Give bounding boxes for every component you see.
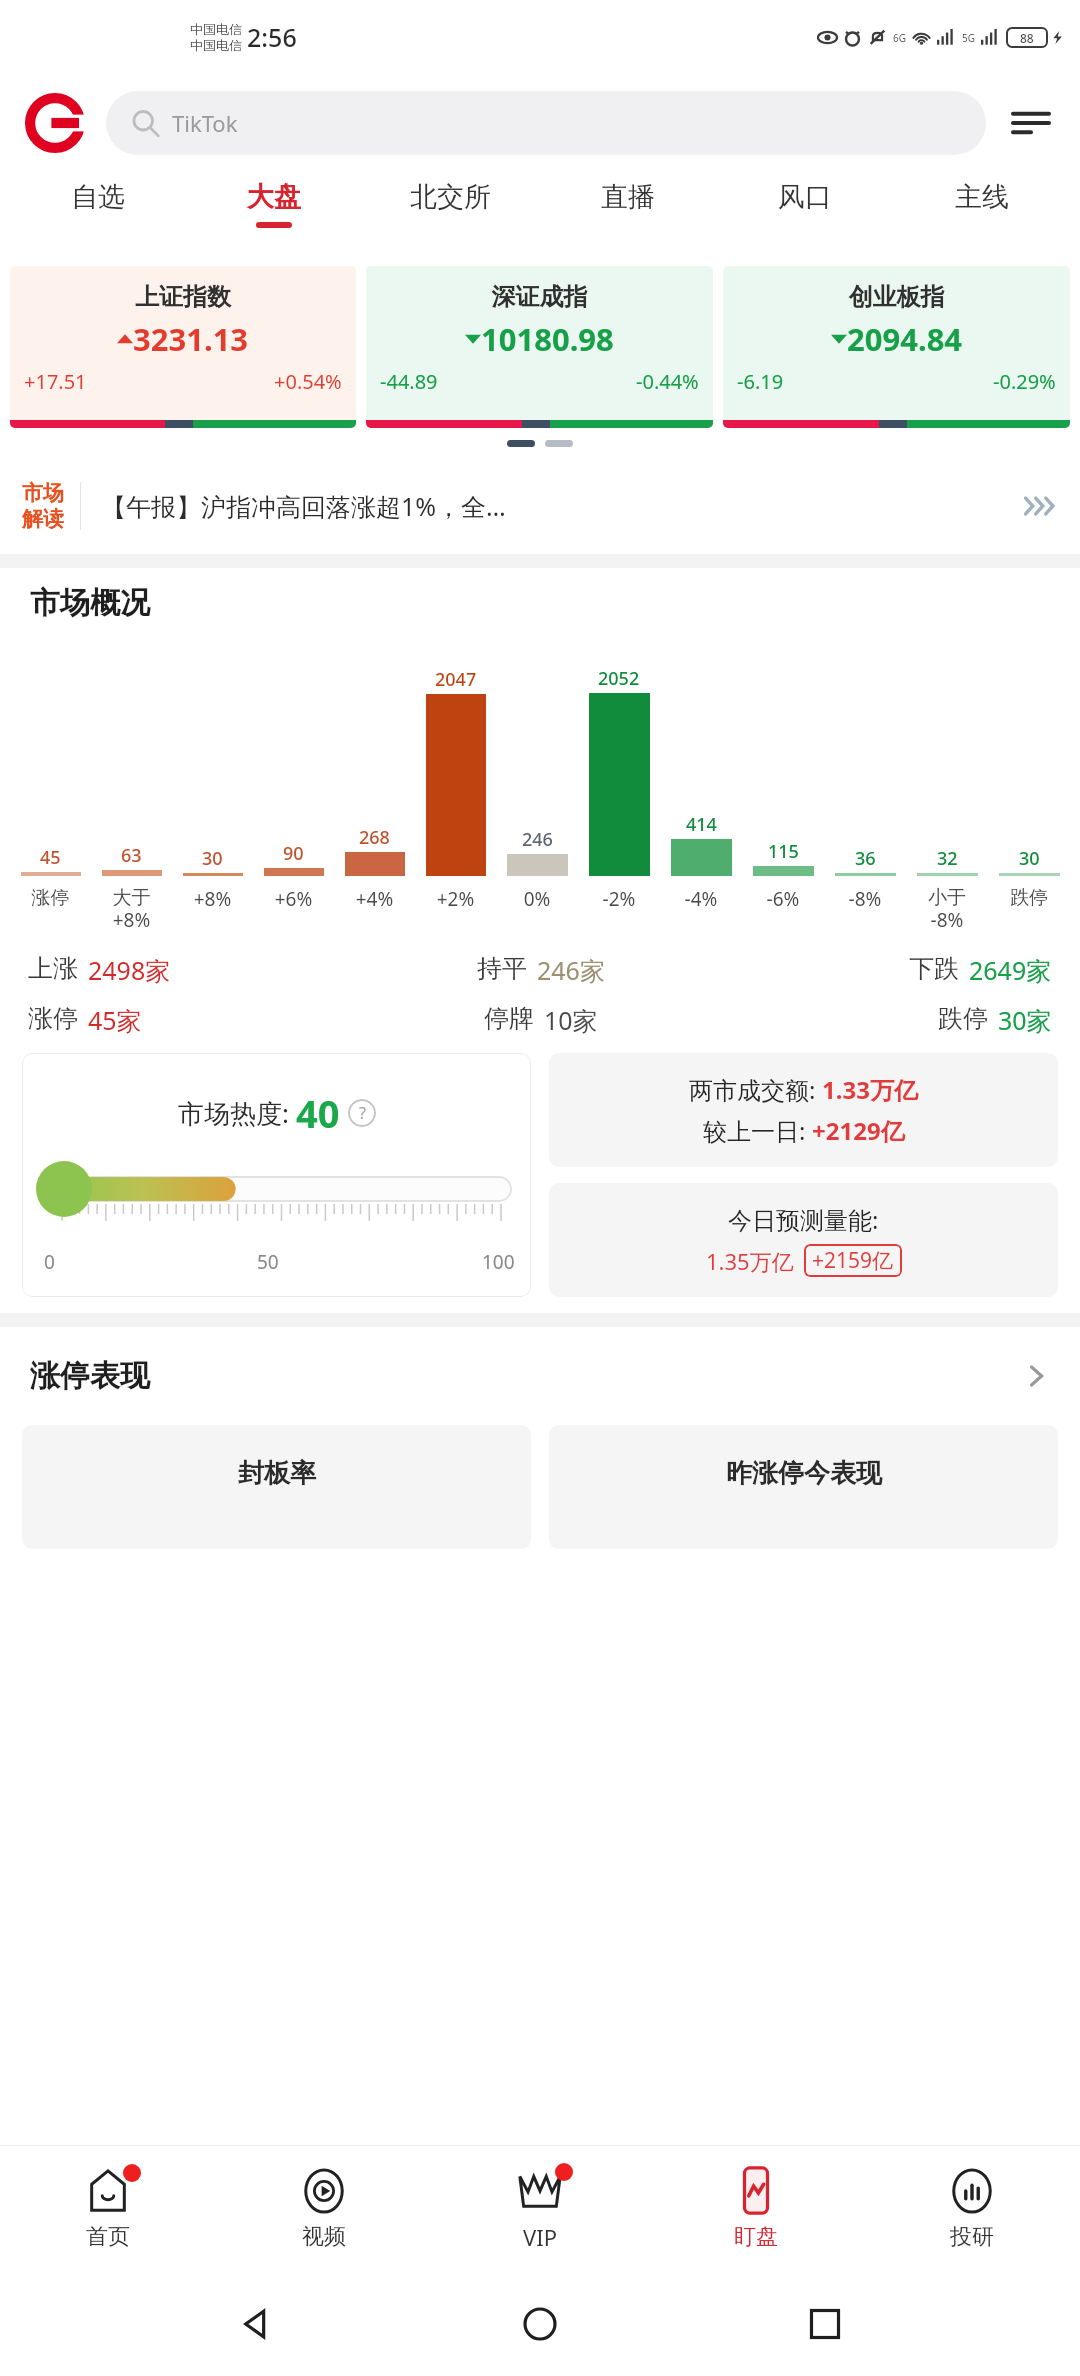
staticText: 246家	[537, 953, 605, 987]
staticText: 10180.98	[481, 318, 614, 360]
staticText: 涨停	[28, 1003, 78, 1034]
staticText: -0.29%	[993, 368, 1056, 395]
staticText: 246	[522, 827, 553, 852]
staticText: -44.89	[380, 368, 438, 395]
staticText: 1.33万亿	[822, 1073, 918, 1106]
staticText: -2%	[578, 886, 660, 912]
staticText: +4%	[334, 886, 415, 912]
button[interactable]: 市场	[0, 458, 1080, 554]
button[interactable]: 投研	[864, 2146, 1080, 2272]
staticText: 市场概况	[30, 584, 150, 622]
staticText: 首页	[86, 2223, 130, 2251]
staticText: +6%	[253, 886, 334, 912]
button[interactable]: 创业板指	[723, 266, 1070, 428]
staticText: ?	[359, 1102, 366, 1124]
staticText: 停牌	[484, 1003, 534, 1034]
staticText: 32	[937, 846, 958, 871]
staticText: 今日预测量能:	[728, 1203, 879, 1236]
staticText: 市场热度:	[178, 1095, 296, 1131]
staticText: 解读	[22, 506, 64, 532]
staticText: TikTok	[172, 108, 238, 138]
staticText: 10家	[544, 1003, 598, 1037]
button[interactable]: Back	[227, 2295, 285, 2353]
staticText: 昨涨停今表现	[726, 1457, 882, 1490]
staticText: 市场	[22, 480, 64, 506]
button[interactable]: 主线	[893, 172, 1070, 222]
staticText: 涨停	[10, 886, 91, 910]
staticText: -0.44%	[636, 368, 699, 395]
staticText: -6.19	[737, 368, 784, 395]
staticText: 90	[283, 841, 304, 866]
staticText: VIP	[523, 2222, 557, 2252]
staticText: 2649家	[969, 953, 1052, 987]
staticText: 40	[296, 1087, 340, 1139]
staticText: 30	[1019, 846, 1040, 871]
staticText: 414	[686, 812, 717, 837]
button[interactable]: Home	[511, 2295, 569, 2353]
staticText: 主线	[955, 180, 1009, 214]
staticText: 0	[44, 1249, 55, 1275]
button[interactable]: 大盘	[186, 172, 362, 228]
staticText: 88	[1020, 30, 1034, 46]
button[interactable]: 首页	[0, 2146, 216, 2272]
staticText: 两市成交额:	[689, 1073, 822, 1106]
button[interactable]: 自选	[10, 172, 186, 222]
staticText: 大盘	[247, 180, 301, 214]
staticText: 持平	[477, 953, 527, 984]
staticText: 0%	[496, 886, 578, 912]
button[interactable]: 涨停表现	[0, 1327, 1080, 1425]
staticText: 2094.84	[847, 318, 963, 360]
staticText: 268	[359, 825, 390, 850]
button[interactable]: Recents	[796, 2295, 854, 2353]
staticText: 自选	[71, 180, 125, 214]
staticText: +0.54%	[274, 368, 342, 395]
staticText: 5G	[962, 31, 975, 45]
button[interactable]: 上证指数	[10, 266, 356, 428]
button[interactable]: 市场热度:	[22, 1053, 531, 1297]
staticText: +2%	[415, 886, 496, 912]
staticText: 3231.13	[133, 318, 249, 360]
staticText: 2047	[435, 667, 477, 692]
staticText: 1.35万亿	[706, 1246, 794, 1276]
staticText: 45家	[88, 1003, 142, 1037]
staticText: 封板率	[238, 1457, 316, 1490]
button[interactable]: 风口	[716, 172, 893, 222]
staticText: 创业板指	[723, 282, 1070, 312]
staticText: 跌停	[938, 1003, 988, 1034]
button[interactable]: 两市成交额:	[549, 1053, 1058, 1167]
button[interactable]: 封板率	[22, 1425, 531, 1549]
button[interactable]: Menu	[1004, 96, 1058, 150]
button[interactable]: VIP	[432, 2146, 648, 2272]
button[interactable]: 昨涨停今表现	[549, 1425, 1058, 1549]
button[interactable]: 视频	[216, 2146, 432, 2272]
staticText: 36	[855, 846, 876, 871]
staticText: 上涨	[28, 953, 78, 984]
staticText: 涨停表现	[30, 1357, 150, 1395]
staticText: 30	[202, 846, 223, 871]
staticText: -8%	[824, 886, 906, 912]
staticText: 中国电信	[190, 37, 242, 53]
staticText: 50	[257, 1249, 279, 1275]
staticText: +17.51	[24, 368, 87, 395]
button[interactable]: 直播	[539, 172, 716, 222]
staticText: 6G	[893, 31, 906, 45]
button[interactable]: 北交所	[362, 172, 539, 222]
staticText: +2129亿	[812, 1114, 905, 1147]
button[interactable]: Logo	[22, 90, 88, 156]
staticText: 63	[121, 843, 142, 868]
staticText: -4%	[660, 886, 742, 912]
staticText: 115	[768, 839, 799, 864]
button[interactable]: 今日预测量能:	[549, 1183, 1058, 1297]
button[interactable]: 深证成指	[366, 266, 713, 428]
staticText: 投研	[950, 2223, 994, 2251]
staticText: 100	[482, 1249, 515, 1275]
staticText: 45	[40, 845, 61, 870]
button[interactable]: TikTok	[106, 91, 986, 155]
staticText: 较上一日:	[703, 1114, 812, 1147]
staticText: 2498家	[88, 953, 171, 987]
staticText: 风口	[778, 180, 832, 214]
staticText: +2159亿	[812, 1246, 894, 1275]
staticText: -6%	[742, 886, 824, 912]
staticText: 跌停	[988, 886, 1070, 910]
button[interactable]: 盯盘	[648, 2146, 864, 2272]
